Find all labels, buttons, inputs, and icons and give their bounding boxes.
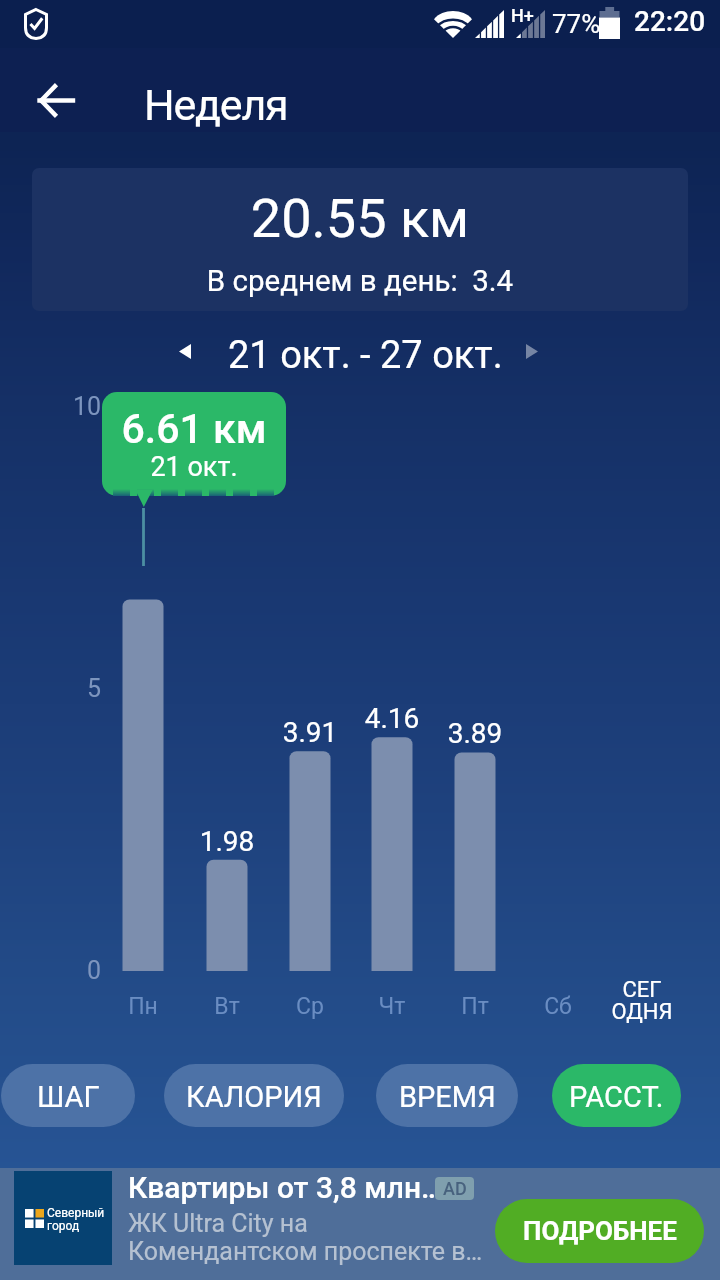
button[interactable]: РАССТ.: [552, 1064, 681, 1127]
staticText: Пн: [98, 993, 188, 1020]
staticText: В среднем в день: 3.4: [32, 264, 688, 299]
button[interactable]: Северный: [0, 1168, 720, 1280]
staticText: 22:20: [634, 5, 706, 38]
button[interactable]: 6.61 км: [102, 392, 286, 496]
staticText: Сб: [513, 993, 603, 1020]
staticText: 6.61 км: [102, 405, 286, 453]
staticText: 3.91: [265, 716, 355, 749]
staticText: H+: [511, 5, 534, 26]
button[interactable]: Previous week: [159, 325, 211, 377]
staticText: ШАГ: [37, 1080, 100, 1114]
staticText: 4.16: [347, 702, 437, 735]
staticText: 1.98: [182, 825, 272, 858]
staticText: ЖК Ultra City на: [128, 1209, 308, 1238]
staticText: Пт: [430, 993, 520, 1020]
staticText: город: [47, 1219, 80, 1233]
staticText: 10: [46, 392, 101, 421]
button[interactable]: 20.55 км: [32, 168, 688, 311]
staticText: ПОДРОБНЕЕ: [523, 1216, 677, 1246]
staticText: 21 окт.: [102, 451, 286, 483]
staticText: ВРЕМЯ: [399, 1080, 496, 1114]
staticText: Квартиры от 3,8 млн…: [128, 1170, 443, 1205]
staticText: 0: [46, 956, 101, 985]
staticText: 5: [46, 674, 101, 703]
button[interactable]: ШАГ: [1, 1064, 135, 1127]
staticText: СЕГ ОДНЯ: [597, 977, 687, 1025]
staticText: Комендантском проспекте в…: [128, 1237, 483, 1266]
staticText: РАССТ.: [569, 1080, 664, 1114]
button[interactable]: Back: [26, 70, 86, 130]
button[interactable]: ПОДРОБНЕЕ: [495, 1199, 704, 1263]
staticText: 20.55 км: [32, 187, 688, 250]
staticText: Чт: [347, 993, 437, 1020]
staticText: 3.89: [430, 717, 520, 750]
button[interactable]: Next week: [506, 325, 558, 377]
staticText: Неделя: [144, 80, 288, 130]
staticText: 77%: [552, 9, 601, 39]
staticText: КАЛОРИЯ: [186, 1080, 322, 1114]
button[interactable]: КАЛОРИЯ: [164, 1064, 344, 1127]
staticText: 21 окт. - 27 окт.: [228, 333, 503, 378]
staticText: Вт: [182, 993, 272, 1020]
staticText: Ср: [265, 993, 355, 1020]
button[interactable]: ВРЕМЯ: [376, 1064, 518, 1127]
staticText: Северный: [47, 1206, 105, 1220]
staticText: AD: [443, 1178, 467, 1199]
